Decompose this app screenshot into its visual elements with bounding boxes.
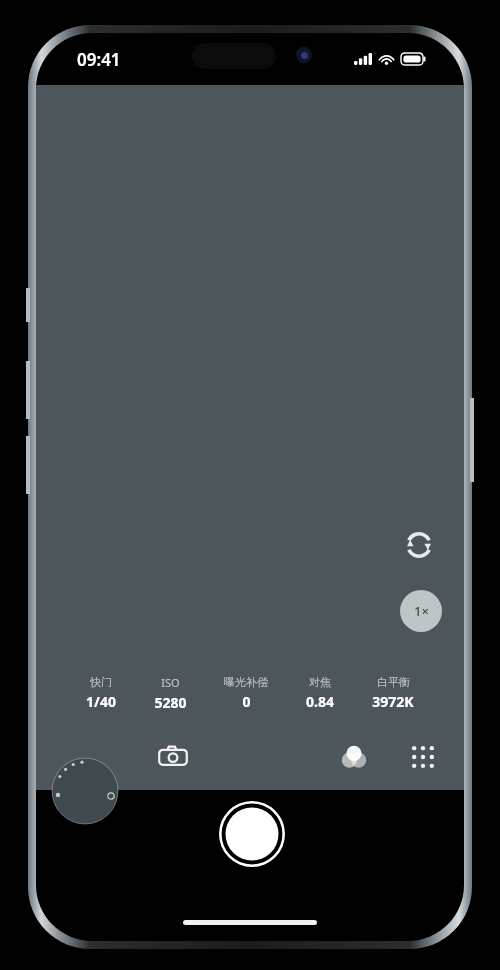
staticText: 0 <box>242 692 251 711</box>
staticText: 曝光补偿 <box>224 675 268 689</box>
staticText: 对焦 <box>309 675 331 689</box>
staticText: 1× <box>414 602 429 620</box>
staticText: 白平衡 <box>377 675 410 689</box>
staticText: 3972K <box>372 692 414 711</box>
staticText: 快门 <box>90 675 112 689</box>
button[interactable]: Filters <box>330 733 378 781</box>
staticText: 0.84 <box>306 692 334 711</box>
button[interactable]: Shutter <box>219 801 285 867</box>
button[interactable]: Switch camera <box>396 522 442 568</box>
staticText: 09:41 <box>77 48 121 71</box>
button[interactable]: 1× <box>400 590 442 632</box>
button[interactable]: Camera mode <box>149 733 197 781</box>
staticText: 1/40 <box>86 692 116 711</box>
staticText: 5280 <box>154 693 187 712</box>
button[interactable]: More options <box>399 733 447 781</box>
staticText: ISO <box>161 675 180 690</box>
